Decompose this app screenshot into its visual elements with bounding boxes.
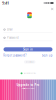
staticText: or continue — [26, 61, 34, 63]
staticText: Upgrade to Pro — [16, 83, 39, 87]
staticText: Unlimited everything — [21, 87, 34, 89]
staticText: Sign up — [42, 54, 53, 57]
button[interactable]: Close — [51, 7, 54, 11]
staticText: Sign in — [23, 48, 33, 51]
staticText: 9:41 — [2, 0, 9, 6]
button[interactable]: or continue — [24, 60, 35, 63]
button[interactable]: Email — [0, 28, 56, 33]
staticText: All systems normal — [24, 72, 36, 74]
button[interactable]: Sign in — [0, 47, 56, 51]
staticText: Password — [7, 36, 19, 39]
staticText: Email — [7, 28, 13, 31]
button[interactable]: Sign up — [42, 54, 53, 57]
button[interactable]: Password — [0, 36, 56, 41]
staticText: Forgot password? — [3, 54, 26, 57]
button[interactable]: Forgot password? — [3, 54, 26, 57]
